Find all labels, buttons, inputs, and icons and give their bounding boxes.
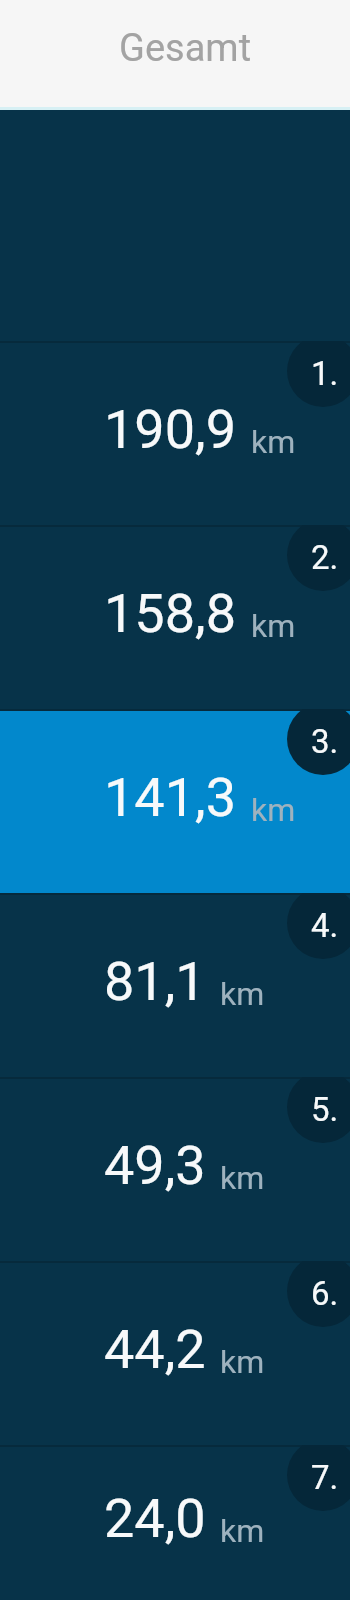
staticText: 4. [311, 906, 339, 945]
staticText: Gesamt [119, 26, 252, 71]
staticText: 190,9 [104, 398, 237, 461]
staticText: 158,8 [104, 582, 237, 645]
staticText: 24,0 [104, 1487, 206, 1550]
staticText: km [251, 423, 296, 461]
button[interactable]: 5. [0, 1077, 350, 1261]
staticText: 2. [311, 538, 339, 577]
staticText: 49,3 [104, 1134, 206, 1197]
staticText: km [220, 1159, 265, 1197]
button[interactable]: 7. [0, 1445, 350, 1600]
button[interactable]: 4. [0, 893, 350, 1077]
staticText: 6. [311, 1274, 339, 1313]
staticText: km [220, 1343, 265, 1381]
staticText: 1. [311, 354, 339, 393]
button[interactable]: 6. [0, 1261, 350, 1445]
button[interactable]: 3. [0, 709, 350, 893]
staticText: 44,2 [104, 1318, 206, 1381]
button[interactable]: 2. [0, 525, 350, 709]
staticText: km [220, 1512, 265, 1550]
staticText: 7. [311, 1458, 339, 1497]
staticText: km [251, 791, 296, 829]
staticText: 3. [311, 722, 339, 761]
staticText: 5. [311, 1090, 339, 1129]
staticText: 141,3 [104, 766, 237, 829]
button[interactable]: 1. [0, 341, 350, 525]
staticText: 81,1 [104, 950, 206, 1013]
staticText: km [251, 607, 296, 645]
staticText: km [220, 975, 265, 1013]
